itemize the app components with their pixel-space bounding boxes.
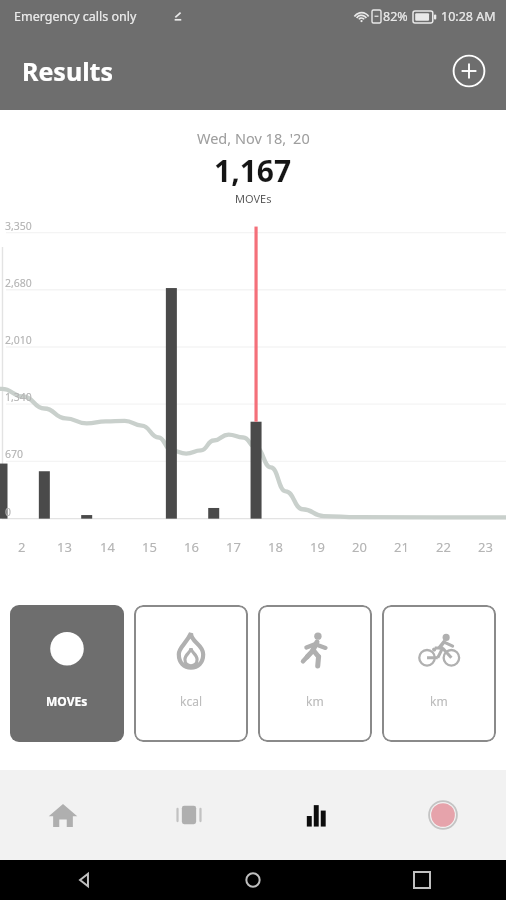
staticText: kcal xyxy=(180,693,202,709)
staticText: 21 xyxy=(394,538,409,556)
staticText: MOVEs xyxy=(235,191,272,206)
button[interactable]: MOVEs xyxy=(10,605,124,742)
staticText: km xyxy=(430,693,448,709)
staticText: 0 xyxy=(5,505,12,519)
staticText: 3,350 xyxy=(5,219,32,233)
staticText: MOVEs xyxy=(46,693,88,709)
staticText: 2,680 xyxy=(5,276,32,290)
staticText: 22 xyxy=(436,538,451,556)
staticText: 2,010 xyxy=(5,333,32,347)
staticText: 19 xyxy=(310,538,325,556)
staticText: 1,167 xyxy=(214,150,292,191)
staticText: 18 xyxy=(268,538,283,556)
button[interactable]: Record xyxy=(379,770,506,860)
staticText: 670 xyxy=(5,447,24,461)
button[interactable]: Add result xyxy=(452,54,486,88)
staticText: 20 xyxy=(352,538,367,556)
button[interactable]: kcal xyxy=(134,605,248,742)
staticText: 13 xyxy=(57,538,72,556)
staticText: 16 xyxy=(184,538,199,556)
staticText: 23 xyxy=(478,538,493,556)
button[interactable]: km xyxy=(258,605,372,742)
button[interactable]: Home xyxy=(0,770,126,860)
staticText: 15 xyxy=(142,538,157,556)
staticText: 17 xyxy=(226,538,241,556)
staticText: 1,340 xyxy=(5,390,32,404)
staticText: Results xyxy=(22,54,113,88)
staticText: 82% xyxy=(383,8,408,25)
staticText: 14 xyxy=(100,538,115,556)
button[interactable]: Results xyxy=(252,770,379,860)
staticText: 10:28 AM xyxy=(441,8,496,25)
button[interactable]: km xyxy=(382,605,496,742)
staticText: km xyxy=(306,693,324,709)
staticText: Wed, Nov 18, '20 xyxy=(197,128,310,148)
button[interactable]: Cards xyxy=(126,770,252,860)
staticText: Emergency calls only xyxy=(14,8,137,25)
staticText: 2 xyxy=(18,538,26,556)
